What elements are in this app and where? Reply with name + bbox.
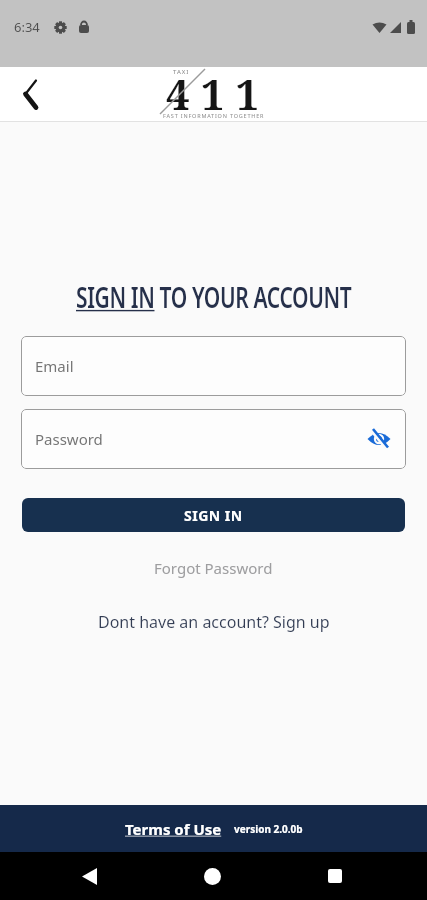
button[interactable] [364,424,394,454]
button[interactable]: Dont have an account? Sign up [98,611,330,633]
button[interactable]: Terms of Use [125,819,222,839]
button[interactable] [195,859,229,893]
staticText: version 2.0.0b [234,822,303,836]
button[interactable] [14,77,48,111]
button[interactable]: Password [21,409,406,469]
staticText: Email [35,356,74,376]
button[interactable]: Forgot Password [154,558,273,578]
staticText: Password [35,429,103,449]
button[interactable]: SIGN IN [22,498,405,532]
button[interactable]: Email [21,336,406,396]
staticText: TAXI [173,68,190,76]
staticText: 6:34 [14,18,40,36]
button[interactable] [318,859,352,893]
staticText: SIGN IN [184,506,243,525]
staticText: 411 [166,65,271,119]
button[interactable] [72,859,106,893]
staticText: FAST INFORMATION TOGETHER [163,112,265,119]
staticText: SIGN IN TO YOUR ACCOUNT [76,278,352,316]
